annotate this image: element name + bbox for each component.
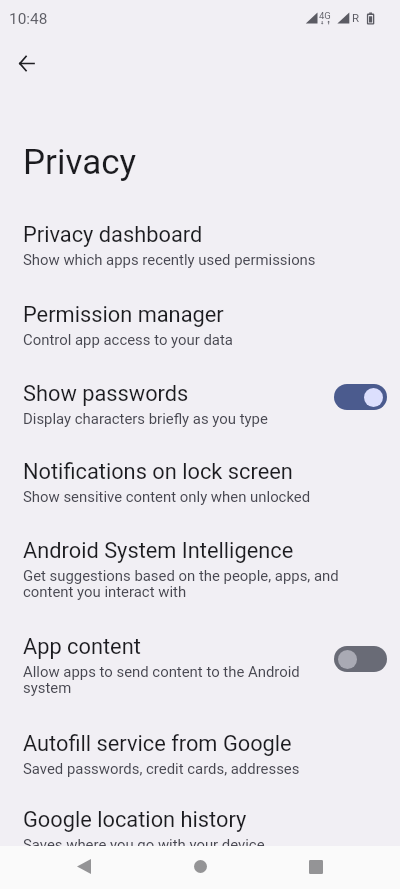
staticText: App content: [23, 634, 141, 660]
staticText: Show which apps recently used permission…: [23, 251, 316, 268]
staticText: Privacy dashboard: [23, 222, 203, 248]
button[interactable]: Back: [55, 845, 112, 888]
button[interactable]: App content: [0, 618, 400, 715]
button[interactable]: Toggle off: [334, 646, 387, 672]
staticText: Android System Intelligence: [23, 538, 294, 564]
staticText: R: [352, 11, 360, 24]
staticText: Saved passwords, credit cards, addresses: [23, 760, 300, 777]
staticText: Google location history: [23, 807, 247, 833]
button[interactable]: Notifications on lock screen: [0, 443, 400, 522]
button[interactable]: Autofill service from Google: [0, 715, 400, 791]
button[interactable]: Home: [172, 845, 229, 888]
button[interactable]: Recent apps: [287, 845, 344, 888]
staticText: Notifications on lock screen: [23, 459, 293, 485]
button[interactable]: Navigate up: [7, 44, 45, 82]
button[interactable]: Privacy dashboard: [0, 206, 400, 286]
staticText: 10:48: [9, 10, 48, 28]
staticText: Control app access to your data: [23, 331, 233, 348]
button[interactable]: Show passwords: [0, 365, 400, 443]
staticText: Autofill service from Google: [23, 731, 292, 757]
button[interactable]: Android System Intelligence: [0, 522, 400, 618]
button[interactable]: Google location history: [0, 791, 400, 871]
staticText: Permission manager: [23, 302, 224, 328]
staticText: Saves where you go with your device: [23, 836, 265, 853]
staticText: Show passwords: [23, 381, 189, 407]
staticText: Show sensitive content only when unlocke…: [23, 488, 311, 505]
staticText: Privacy: [23, 142, 137, 183]
staticText: Allow apps to send content to the Androi…: [23, 663, 323, 697]
button[interactable]: Permission manager: [0, 286, 400, 365]
staticText: Get suggestions based on the people, app…: [23, 567, 368, 601]
staticText: Display characters briefly as you type: [23, 410, 268, 427]
button[interactable]: Toggle on: [334, 384, 387, 410]
staticText: 4G: [319, 10, 331, 21]
